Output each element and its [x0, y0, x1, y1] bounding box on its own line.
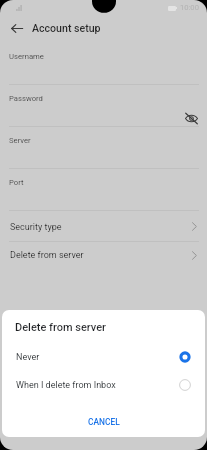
button[interactable]: CANCEL: [79, 412, 129, 432]
staticText: When I delete from Inbox: [16, 380, 116, 391]
staticText: Account setup: [32, 22, 101, 34]
staticText: Delete from server: [15, 321, 106, 334]
button[interactable]: Never: [2, 343, 205, 371]
button[interactable]: [0, 85, 207, 126]
staticText: Port: [9, 178, 24, 187]
staticText: Delete from server: [10, 250, 84, 261]
button[interactable]: Back: [5, 17, 28, 40]
button[interactable]: Show password: [183, 110, 199, 126]
staticText: Username: [9, 52, 44, 61]
staticText: 10:00: [180, 3, 199, 12]
button[interactable]: [0, 242, 207, 272]
button[interactable]: [0, 44, 207, 84]
staticText: Security type: [10, 222, 62, 233]
button[interactable]: [0, 127, 207, 168]
button[interactable]: When I delete from Inbox: [2, 371, 205, 399]
staticText: Never: [16, 352, 40, 363]
staticText: Server: [9, 136, 31, 145]
staticText: Password: [9, 94, 43, 103]
staticText: CANCEL: [88, 417, 120, 427]
button[interactable]: [0, 211, 207, 241]
button[interactable]: [0, 169, 207, 210]
